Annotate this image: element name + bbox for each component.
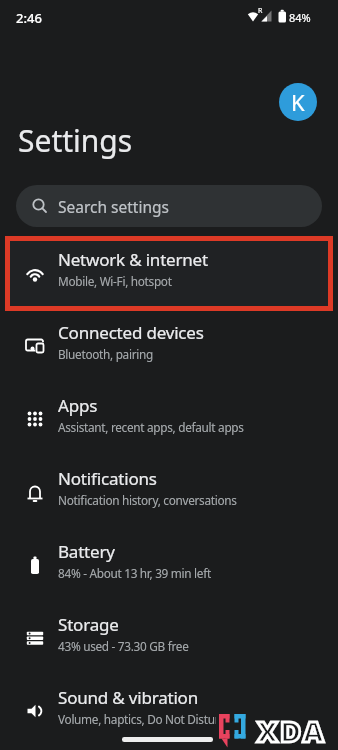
staticText: Notification history, conversations xyxy=(58,492,237,508)
button[interactable]: Sound & vibration xyxy=(0,670,338,743)
staticText: Settings xyxy=(18,120,133,161)
staticText: 84% xyxy=(289,10,311,25)
button[interactable]: Network & internet xyxy=(0,232,338,305)
button[interactable]: Connected devices xyxy=(0,305,338,378)
staticText: Sound & vibration xyxy=(58,686,198,709)
staticText: Storage xyxy=(58,613,119,636)
staticText: XDA xyxy=(257,711,326,750)
staticText: 43% used - 73.30 GB free xyxy=(58,638,189,654)
staticText: Bluetooth, pairing xyxy=(58,346,153,362)
button[interactable]: Apps xyxy=(0,378,338,451)
staticText: Connected devices xyxy=(58,321,204,344)
button[interactable]: Storage xyxy=(0,597,338,670)
staticText: Battery xyxy=(58,540,115,563)
staticText: Mobile, Wi-Fi, hotspot xyxy=(58,273,172,289)
staticText: K xyxy=(291,87,305,117)
staticText: Apps xyxy=(58,394,98,417)
staticText: Network & internet xyxy=(58,248,208,271)
button[interactable]: K xyxy=(279,83,317,121)
button[interactable]: Search settings xyxy=(16,185,322,227)
button[interactable]: Notifications xyxy=(0,451,338,524)
staticText: Notifications xyxy=(58,467,157,490)
staticText: Volume, haptics, Do Not Disturb xyxy=(58,711,227,727)
staticText: Search settings xyxy=(58,196,169,217)
staticText: 2:46 xyxy=(16,9,42,27)
staticText: Assistant, recent apps, default apps xyxy=(58,419,244,435)
staticText: 84% - About 13 hr, 39 min left xyxy=(58,565,211,581)
staticText: R xyxy=(258,6,263,16)
button[interactable]: Battery xyxy=(0,524,338,597)
